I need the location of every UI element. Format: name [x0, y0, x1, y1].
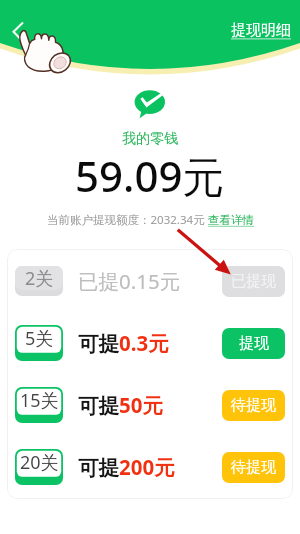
staticText: 20关 — [20, 450, 59, 475]
staticText: 15关 — [20, 388, 59, 413]
staticText: 可提200元 — [78, 453, 175, 481]
button[interactable]: 待提现 — [222, 390, 285, 421]
staticText: 我的零钱 — [122, 130, 178, 148]
staticText: 提现明细 — [231, 21, 291, 40]
button[interactable]: 查看详情 — [208, 213, 254, 227]
staticText: 待提现 — [231, 458, 276, 477]
staticText: 已提0.15元 — [78, 267, 181, 295]
staticText: 59.09元 — [75, 147, 225, 204]
staticText: 当前账户提现额度：2032.34元 — [47, 212, 208, 228]
staticText: 可提0.3元 — [78, 329, 169, 357]
staticText: 待提现 — [231, 396, 276, 415]
button[interactable]: Back — [6, 16, 36, 46]
staticText: 提现 — [239, 334, 269, 353]
staticText: 2关 — [25, 266, 54, 290]
button[interactable]: 待提现 — [222, 452, 285, 483]
staticText: 已提现 — [231, 272, 276, 291]
staticText: 5关 — [25, 326, 54, 351]
staticText: 可提50元 — [78, 391, 163, 419]
button[interactable]: 提现 — [222, 328, 285, 359]
staticText: 查看详情 — [208, 213, 254, 227]
button[interactable]: 提现明细 — [231, 21, 291, 40]
button[interactable]: 已提现 — [222, 266, 285, 297]
